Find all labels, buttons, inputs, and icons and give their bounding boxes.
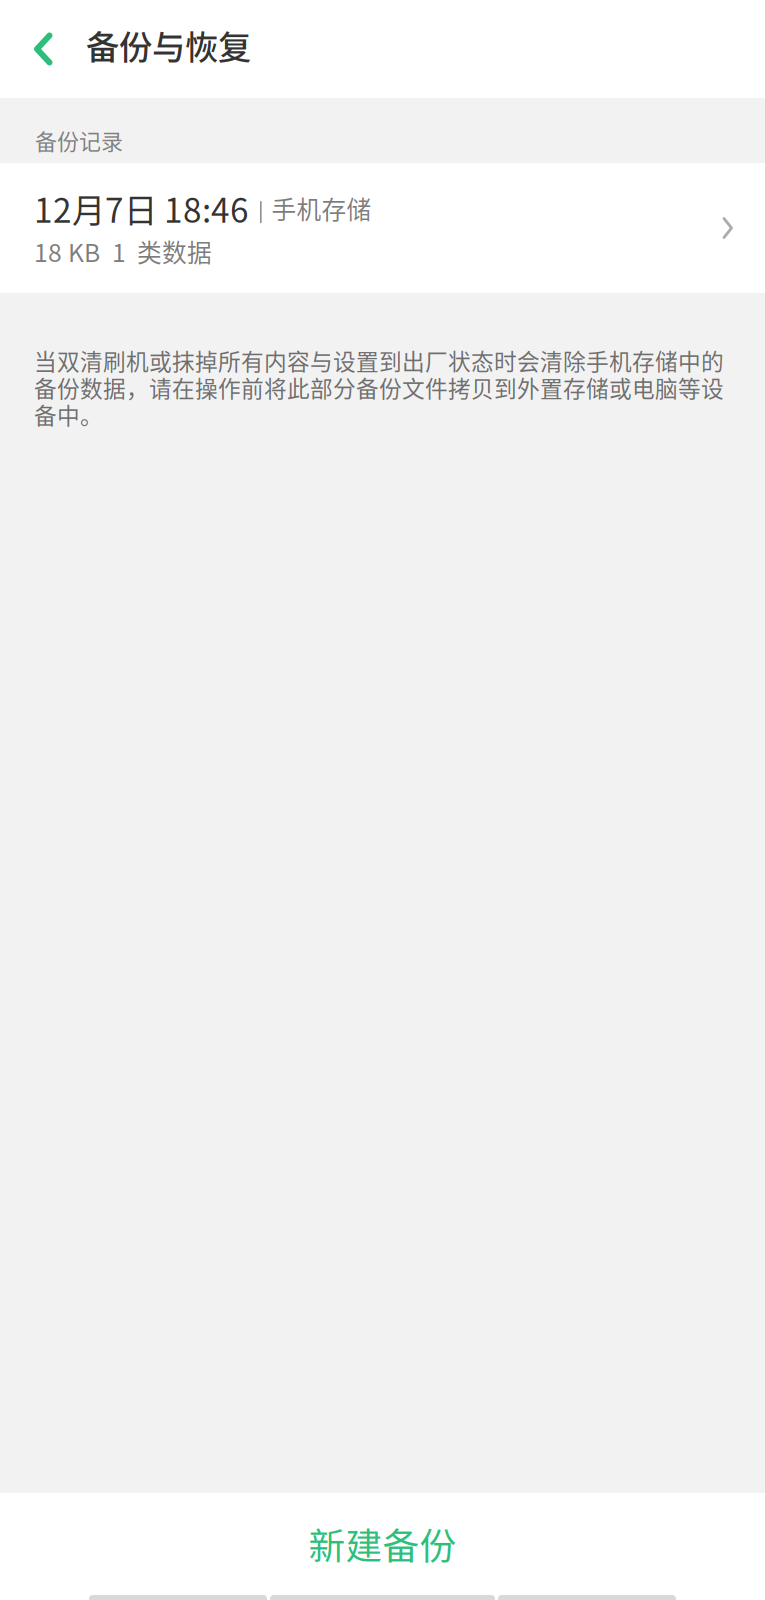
staticText: 1: [112, 233, 126, 269]
staticText: 备份与恢复: [86, 21, 251, 69]
staticText: 手机存储: [272, 190, 372, 226]
staticText: 18 KB: [34, 233, 100, 269]
staticText: 类数据: [137, 233, 212, 269]
button[interactable]: 12月7日 18:46: [0, 163, 765, 293]
button[interactable]: 新建备份: [0, 1493, 765, 1595]
staticText: 新建备份: [308, 1517, 456, 1570]
button[interactable]: Back: [0, 0, 86, 98]
staticText: 备份记录: [35, 124, 123, 156]
staticText: 当双清刷机或抹掉所有内容与设置到出厂状态时会清除手机存储中的备份数据，请在操作前…: [34, 347, 724, 428]
staticText: 12月7日 18:46: [34, 184, 249, 232]
